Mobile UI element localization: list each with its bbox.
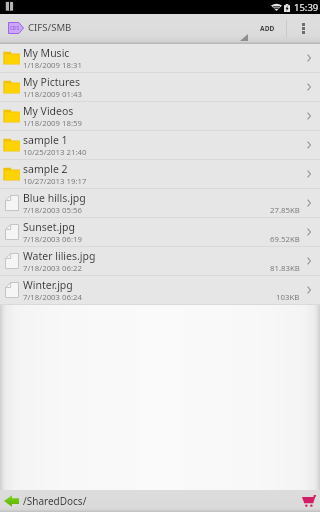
button[interactable]: sample 2 — [0, 160, 320, 188]
button[interactable]: CIFS — [0, 22, 245, 35]
staticText: 1/18/2009 01:43 — [23, 89, 82, 100]
staticText: My Music — [23, 46, 70, 60]
staticText: sample 1 — [23, 133, 68, 147]
staticText: Winter.jpg — [23, 278, 73, 292]
staticText: 7/18/2003 06:24 — [23, 292, 82, 303]
staticText: ADD — [260, 24, 275, 33]
staticText: Sunset.jpg — [23, 220, 75, 234]
button[interactable]: My Videos — [0, 102, 320, 130]
button[interactable]: My Pictures — [0, 73, 320, 101]
staticText: sample 2 — [23, 162, 68, 176]
button[interactable]: More options — [287, 14, 320, 42]
staticText: 1/18/2009 18:31 — [23, 60, 82, 71]
staticText: 10/27/2013 19:17 — [23, 176, 87, 187]
staticText: CIFS/SMB — [28, 21, 72, 34]
button[interactable]: Blue hills.jpg — [0, 189, 320, 217]
button[interactable]: My Music — [0, 44, 320, 72]
staticText: /SharedDocs/ — [23, 494, 87, 508]
button[interactable]: Cart — [299, 490, 319, 512]
staticText: 10/25/2013 21:40 — [23, 147, 87, 158]
staticText: 1/18/2009 18:59 — [23, 118, 82, 129]
staticText: My Pictures — [23, 75, 81, 89]
button[interactable]: sample 1 — [0, 131, 320, 159]
staticText: 15:39 — [294, 1, 319, 14]
button[interactable]: ADD — [245, 14, 286, 42]
button[interactable]: Back — [4, 490, 19, 512]
button[interactable]: Water lilies.jpg — [0, 247, 320, 275]
staticText: My Videos — [23, 104, 74, 118]
staticText: 7/18/2003 06:22 — [23, 263, 82, 274]
button[interactable]: Winter.jpg — [0, 276, 320, 304]
staticText: CIFS — [10, 25, 20, 31]
staticText: 7/18/2003 06:19 — [23, 234, 82, 245]
staticText: 103KB — [276, 292, 300, 303]
staticText: 27.85KB — [270, 205, 300, 216]
staticText: 7/18/2003 05:56 — [23, 205, 82, 216]
button[interactable]: Sunset.jpg — [0, 218, 320, 246]
staticText: Water lilies.jpg — [23, 249, 96, 263]
staticText: 81.83KB — [270, 263, 300, 274]
staticText: Blue hills.jpg — [23, 191, 86, 205]
staticText: 69.52KB — [270, 234, 300, 245]
